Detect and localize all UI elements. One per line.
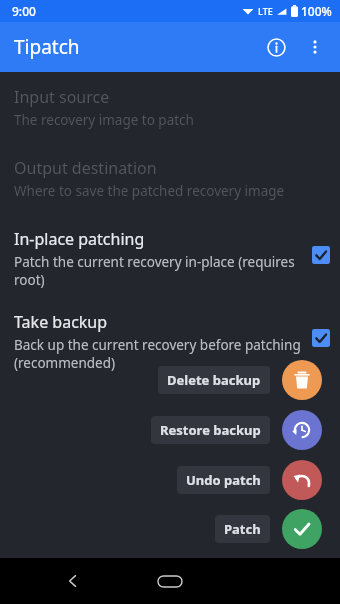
staticText: Undo patch — [186, 471, 261, 489]
button[interactable]: Back — [56, 564, 90, 598]
button[interactable]: Undo patch — [282, 460, 322, 500]
staticText: Back up the current recovery before patc… — [14, 336, 301, 372]
button[interactable]: Input source — [0, 86, 340, 129]
staticText: Restore backup — [160, 421, 261, 439]
staticText: LTE — [258, 5, 273, 17]
staticText: The recovery image to patch — [14, 111, 194, 129]
staticText: Patch — [224, 520, 261, 538]
button[interactable]: Patch — [282, 509, 322, 549]
staticText: Delete backup — [167, 371, 261, 389]
button[interactable]: Restore backup — [282, 410, 322, 450]
button[interactable]: Output destination — [0, 157, 340, 200]
button[interactable]: Restore backup — [151, 416, 270, 444]
button[interactable]: Patch — [215, 515, 270, 543]
button[interactable]: Info — [256, 27, 296, 67]
staticText: Patch the current recovery in-place (req… — [14, 253, 295, 289]
staticText: Tipatch — [14, 34, 80, 60]
button[interactable]: Take backup — [0, 311, 340, 372]
staticText: Output destination — [14, 157, 157, 179]
button[interactable]: Delete backup — [282, 360, 322, 400]
button[interactable]: More options — [296, 28, 334, 66]
button[interactable]: Home — [148, 568, 192, 594]
button[interactable]: Undo patch — [177, 466, 270, 494]
staticText: In-place patching — [14, 228, 145, 250]
staticText: Take backup — [14, 311, 108, 333]
button[interactable]: In-place patching — [0, 228, 340, 289]
staticText: 100% — [301, 3, 332, 19]
button[interactable]: Delete backup — [158, 366, 270, 394]
staticText: Where to save the patched recovery image — [14, 182, 285, 200]
staticText: Input source — [14, 86, 110, 108]
staticText: 9:00 — [12, 3, 36, 19]
